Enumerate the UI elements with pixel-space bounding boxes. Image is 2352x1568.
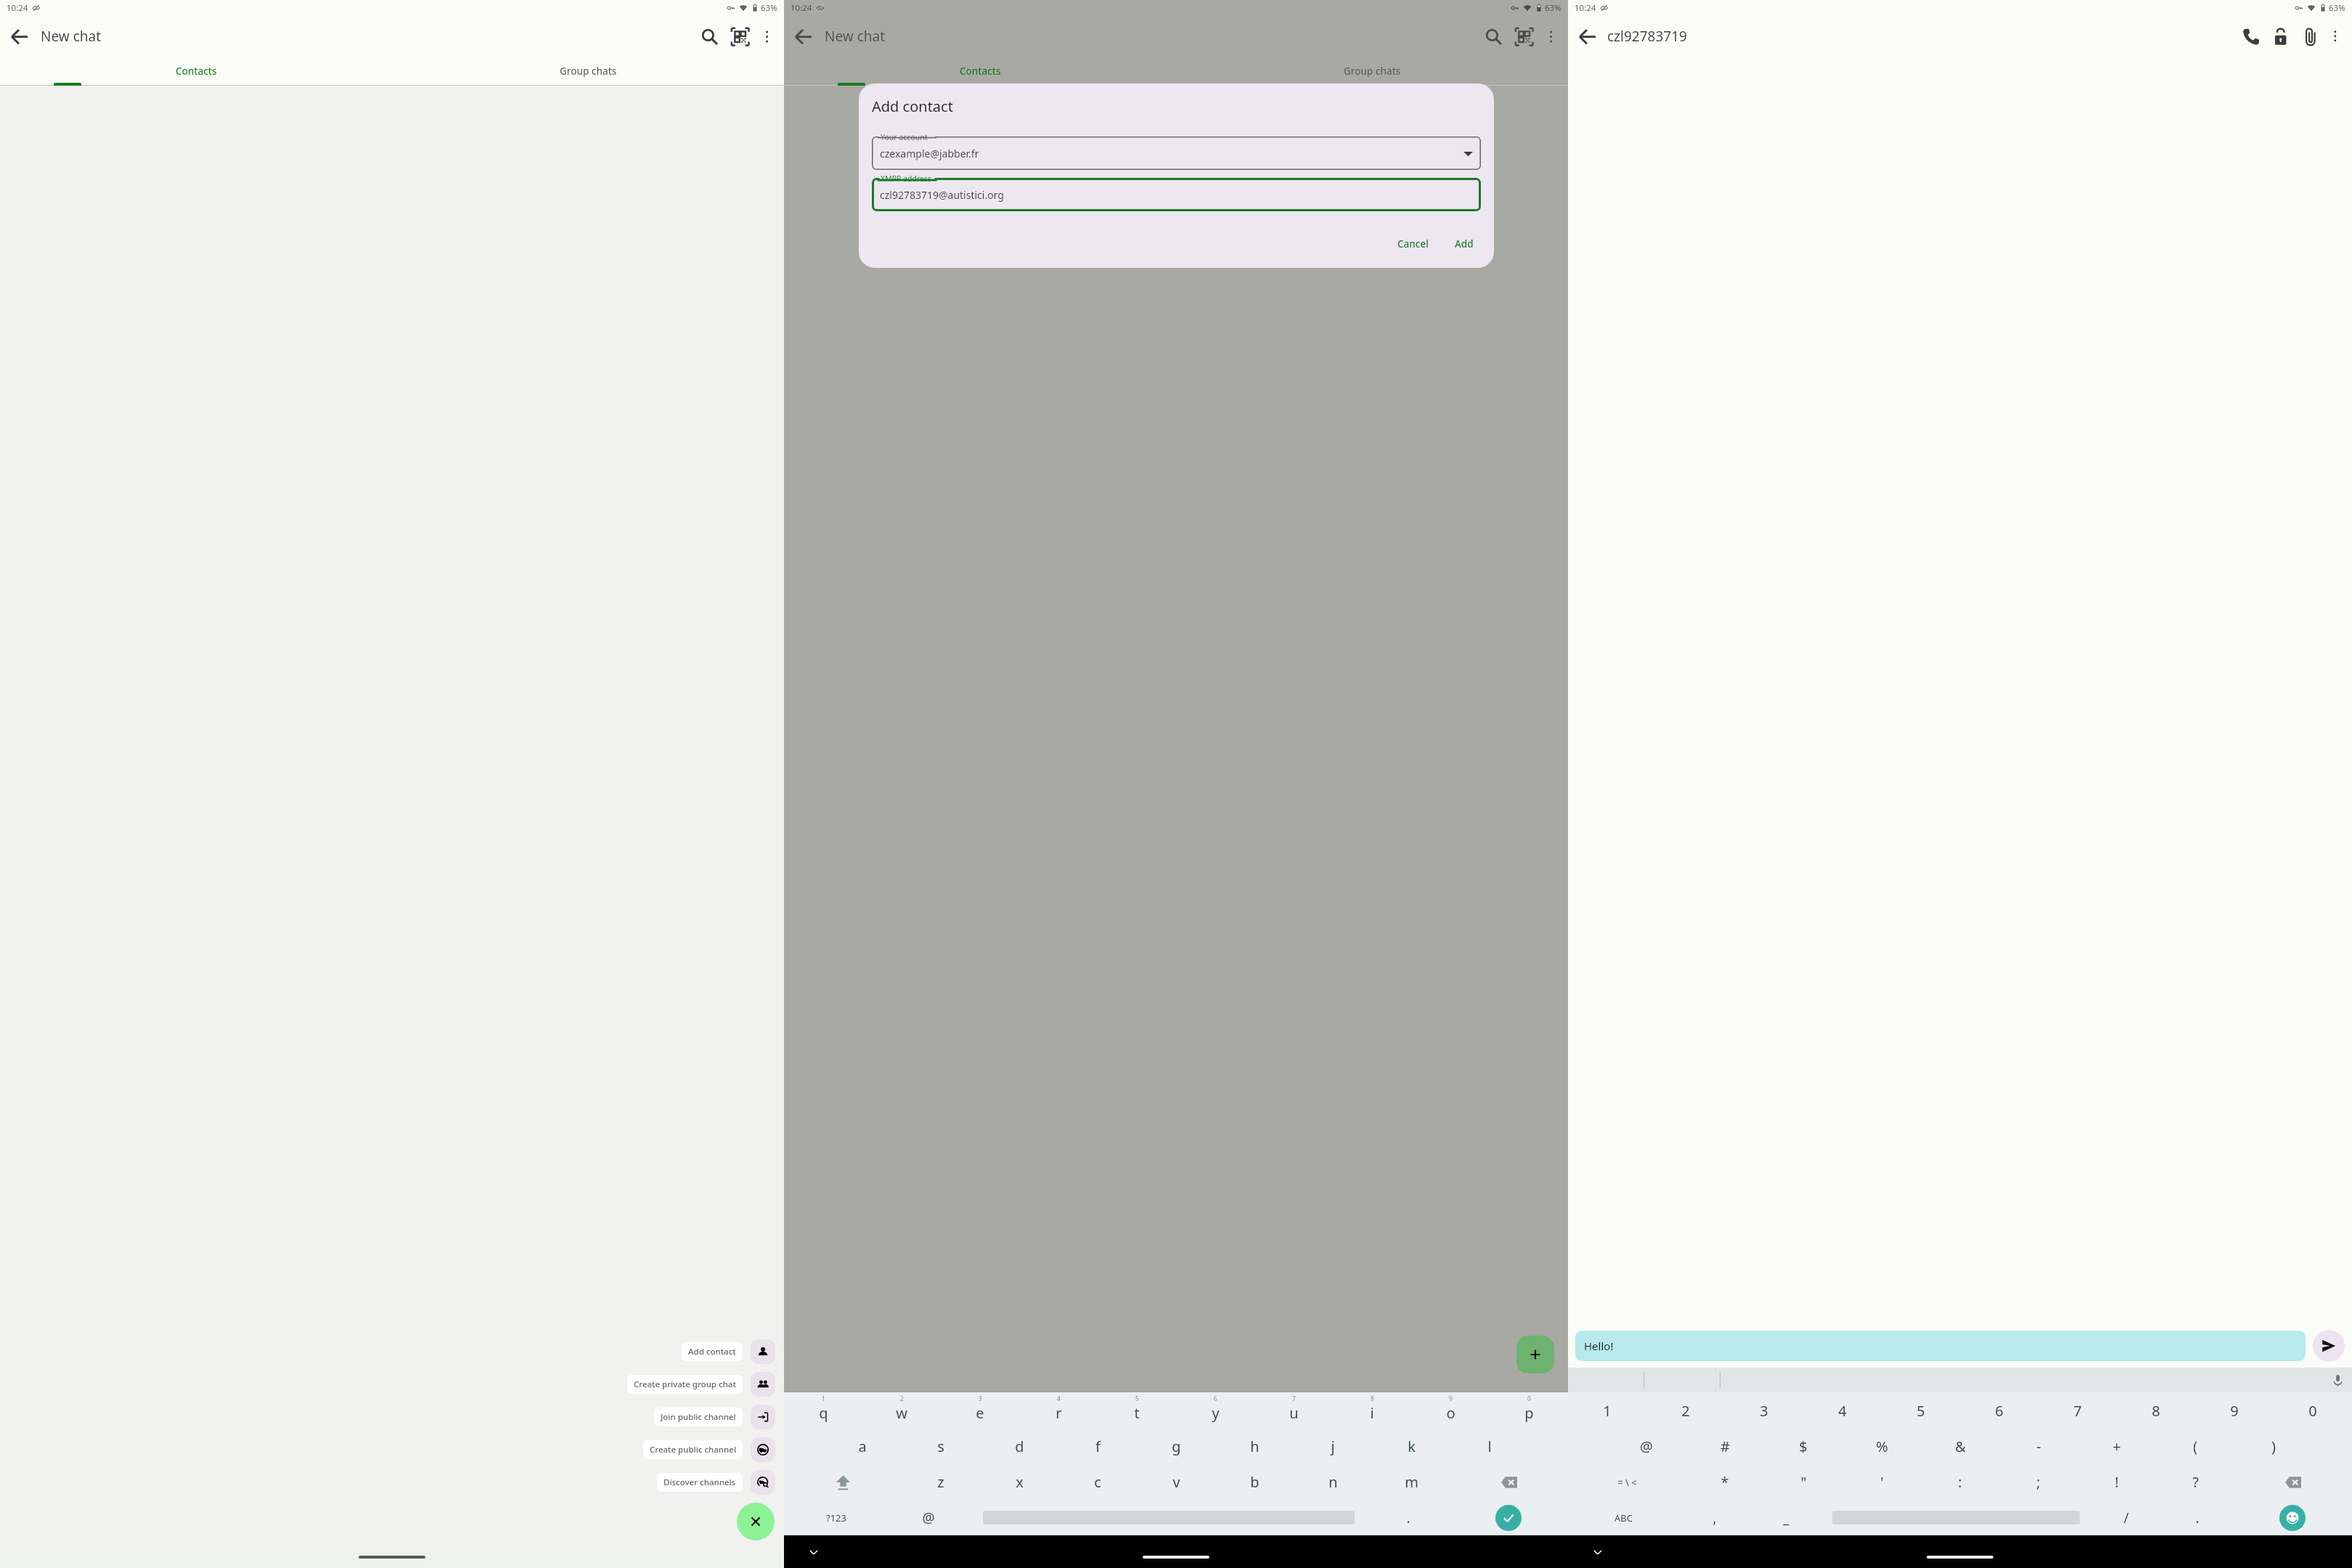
button[interactable]: Voice input bbox=[2331, 1373, 2345, 1387]
button[interactable]: x bbox=[980, 1464, 1058, 1500]
button[interactable]: ; bbox=[1999, 1464, 2078, 1500]
button[interactable]: 3 bbox=[1725, 1392, 1803, 1429]
button[interactable]: ? bbox=[2156, 1464, 2234, 1500]
button[interactable]: 1 bbox=[1568, 1392, 1646, 1429]
button[interactable]: h bbox=[1215, 1429, 1294, 1464]
button[interactable]: ! bbox=[2078, 1464, 2156, 1500]
button[interactable]: 4 bbox=[1019, 1392, 1098, 1429]
button[interactable]: Contacts bbox=[784, 57, 1176, 86]
button[interactable]: 9 bbox=[2195, 1392, 2274, 1429]
button[interactable]: Cancel bbox=[1390, 233, 1436, 255]
button[interactable] bbox=[1821, 1500, 2091, 1535]
button[interactable]: Backspace bbox=[2234, 1464, 2352, 1500]
button[interactable]: Back bbox=[6, 23, 33, 50]
button[interactable]: ( bbox=[2156, 1429, 2234, 1464]
button[interactable]: - bbox=[1999, 1429, 2078, 1464]
button[interactable]: 1 bbox=[784, 1392, 862, 1429]
button[interactable]: 3 bbox=[941, 1392, 1019, 1429]
button[interactable]: 2 bbox=[862, 1392, 941, 1429]
button[interactable]: s bbox=[902, 1429, 980, 1464]
button[interactable]: Hello! bbox=[1575, 1331, 2306, 1361]
button[interactable]: Contacts bbox=[0, 57, 392, 86]
button[interactable]: f bbox=[1058, 1429, 1137, 1464]
button[interactable]: 6 bbox=[1960, 1392, 2038, 1429]
button[interactable]: n bbox=[1294, 1464, 1372, 1500]
button[interactable]: More options bbox=[755, 25, 778, 48]
button[interactable]: : bbox=[1921, 1464, 1999, 1500]
button[interactable]: Create private group chat bbox=[627, 1372, 775, 1397]
button[interactable]: # bbox=[1686, 1429, 1764, 1464]
button[interactable]: + bbox=[2078, 1429, 2156, 1464]
button[interactable]: 5 bbox=[1098, 1392, 1176, 1429]
button[interactable]: Enter bbox=[1448, 1500, 1568, 1535]
button[interactable]: 8 bbox=[1333, 1392, 1411, 1429]
button[interactable]: Add contact bbox=[682, 1339, 775, 1364]
button[interactable]: Backspace bbox=[1450, 1464, 1568, 1500]
button[interactable]: ?123 bbox=[784, 1500, 889, 1535]
button[interactable]: 0 bbox=[2274, 1392, 2352, 1429]
button[interactable]: ' bbox=[1842, 1464, 1921, 1500]
button[interactable]: Search bbox=[1479, 23, 1507, 50]
button[interactable]: 7 bbox=[1254, 1392, 1333, 1429]
button[interactable]: ABC bbox=[1568, 1500, 1679, 1535]
button[interactable]: ) bbox=[2234, 1429, 2313, 1464]
button[interactable]: l bbox=[1450, 1429, 1529, 1464]
button[interactable]: v bbox=[1137, 1464, 1215, 1500]
button[interactable]: Group chats bbox=[1176, 57, 1568, 86]
button[interactable]: = \ < bbox=[1568, 1464, 1686, 1500]
button[interactable]: Encryption bbox=[2266, 23, 2294, 50]
button[interactable]: More options bbox=[1539, 25, 1562, 48]
button[interactable]: & bbox=[1921, 1429, 1999, 1464]
button[interactable]: k bbox=[1372, 1429, 1450, 1464]
button[interactable]: 4 bbox=[1803, 1392, 1882, 1429]
button[interactable]: , bbox=[1679, 1500, 1750, 1535]
button[interactable]: Create public channel bbox=[643, 1437, 775, 1462]
button[interactable]: Call bbox=[2237, 23, 2264, 50]
staticText: w bbox=[896, 1403, 907, 1423]
button[interactable]: Emoji bbox=[2233, 1500, 2352, 1535]
button[interactable]: b bbox=[1215, 1464, 1294, 1500]
button[interactable]: @ bbox=[1607, 1429, 1686, 1464]
button[interactable]: 6 bbox=[1176, 1392, 1254, 1429]
button[interactable]: 8 bbox=[2117, 1392, 2195, 1429]
button[interactable]: Add bbox=[1447, 233, 1481, 255]
button[interactable]: " bbox=[1764, 1464, 1842, 1500]
button[interactable]: g bbox=[1137, 1429, 1215, 1464]
button[interactable]: j bbox=[1294, 1429, 1372, 1464]
button[interactable]: More options bbox=[2324, 25, 2346, 47]
button[interactable]: * bbox=[1686, 1464, 1764, 1500]
button[interactable]: Shift bbox=[784, 1464, 902, 1500]
button[interactable]: a bbox=[823, 1429, 902, 1464]
button[interactable]: Scan QR code bbox=[1510, 23, 1538, 50]
button[interactable]: c bbox=[1058, 1464, 1137, 1500]
button[interactable]: Send bbox=[2313, 1330, 2345, 1362]
button[interactable]: Close menu bbox=[737, 1503, 775, 1540]
button[interactable]: m bbox=[1372, 1464, 1450, 1500]
button[interactable]: . bbox=[1368, 1500, 1448, 1535]
button[interactable]: 5 bbox=[1882, 1392, 1960, 1429]
button[interactable]: _ bbox=[1750, 1500, 1821, 1535]
button[interactable]: . bbox=[2162, 1500, 2233, 1535]
button[interactable]: d bbox=[980, 1429, 1058, 1464]
button[interactable]: Group chats bbox=[392, 57, 784, 86]
button[interactable]: % bbox=[1842, 1429, 1921, 1464]
button[interactable]: Scan QR code bbox=[726, 23, 754, 50]
staticText: 10:24 bbox=[1575, 2, 1596, 14]
button[interactable] bbox=[968, 1500, 1368, 1535]
button[interactable]: @ bbox=[889, 1500, 968, 1535]
button[interactable]: Attach file bbox=[2296, 23, 2324, 50]
button[interactable]: 0 bbox=[1490, 1392, 1568, 1429]
button[interactable]: Back bbox=[1574, 23, 1601, 50]
button[interactable]: New chat bbox=[1516, 1336, 1554, 1373]
button[interactable]: / bbox=[2091, 1500, 2162, 1535]
button[interactable]: Join public channel bbox=[654, 1405, 775, 1429]
button[interactable]: z bbox=[902, 1464, 980, 1500]
button[interactable]: Search bbox=[695, 23, 723, 50]
button[interactable]: Discover channels bbox=[657, 1470, 775, 1495]
staticText: 10:24 bbox=[791, 2, 812, 14]
button[interactable]: 7 bbox=[2038, 1392, 2117, 1429]
button[interactable]: $ bbox=[1764, 1429, 1842, 1464]
button[interactable]: Back bbox=[790, 23, 817, 50]
button[interactable]: 2 bbox=[1646, 1392, 1725, 1429]
button[interactable]: 9 bbox=[1411, 1392, 1490, 1429]
